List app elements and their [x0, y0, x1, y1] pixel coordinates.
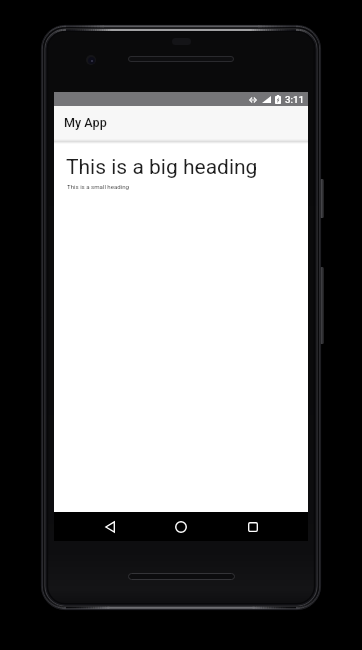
staticText: 3:11 — [285, 94, 305, 105]
staticText: This is a small heading — [67, 183, 129, 190]
staticText: This is a big heading — [66, 155, 258, 180]
button[interactable]: Home — [159, 512, 203, 541]
staticText: My App — [64, 115, 107, 130]
button[interactable]: Back — [88, 512, 132, 541]
button[interactable]: Recent apps — [231, 512, 275, 541]
